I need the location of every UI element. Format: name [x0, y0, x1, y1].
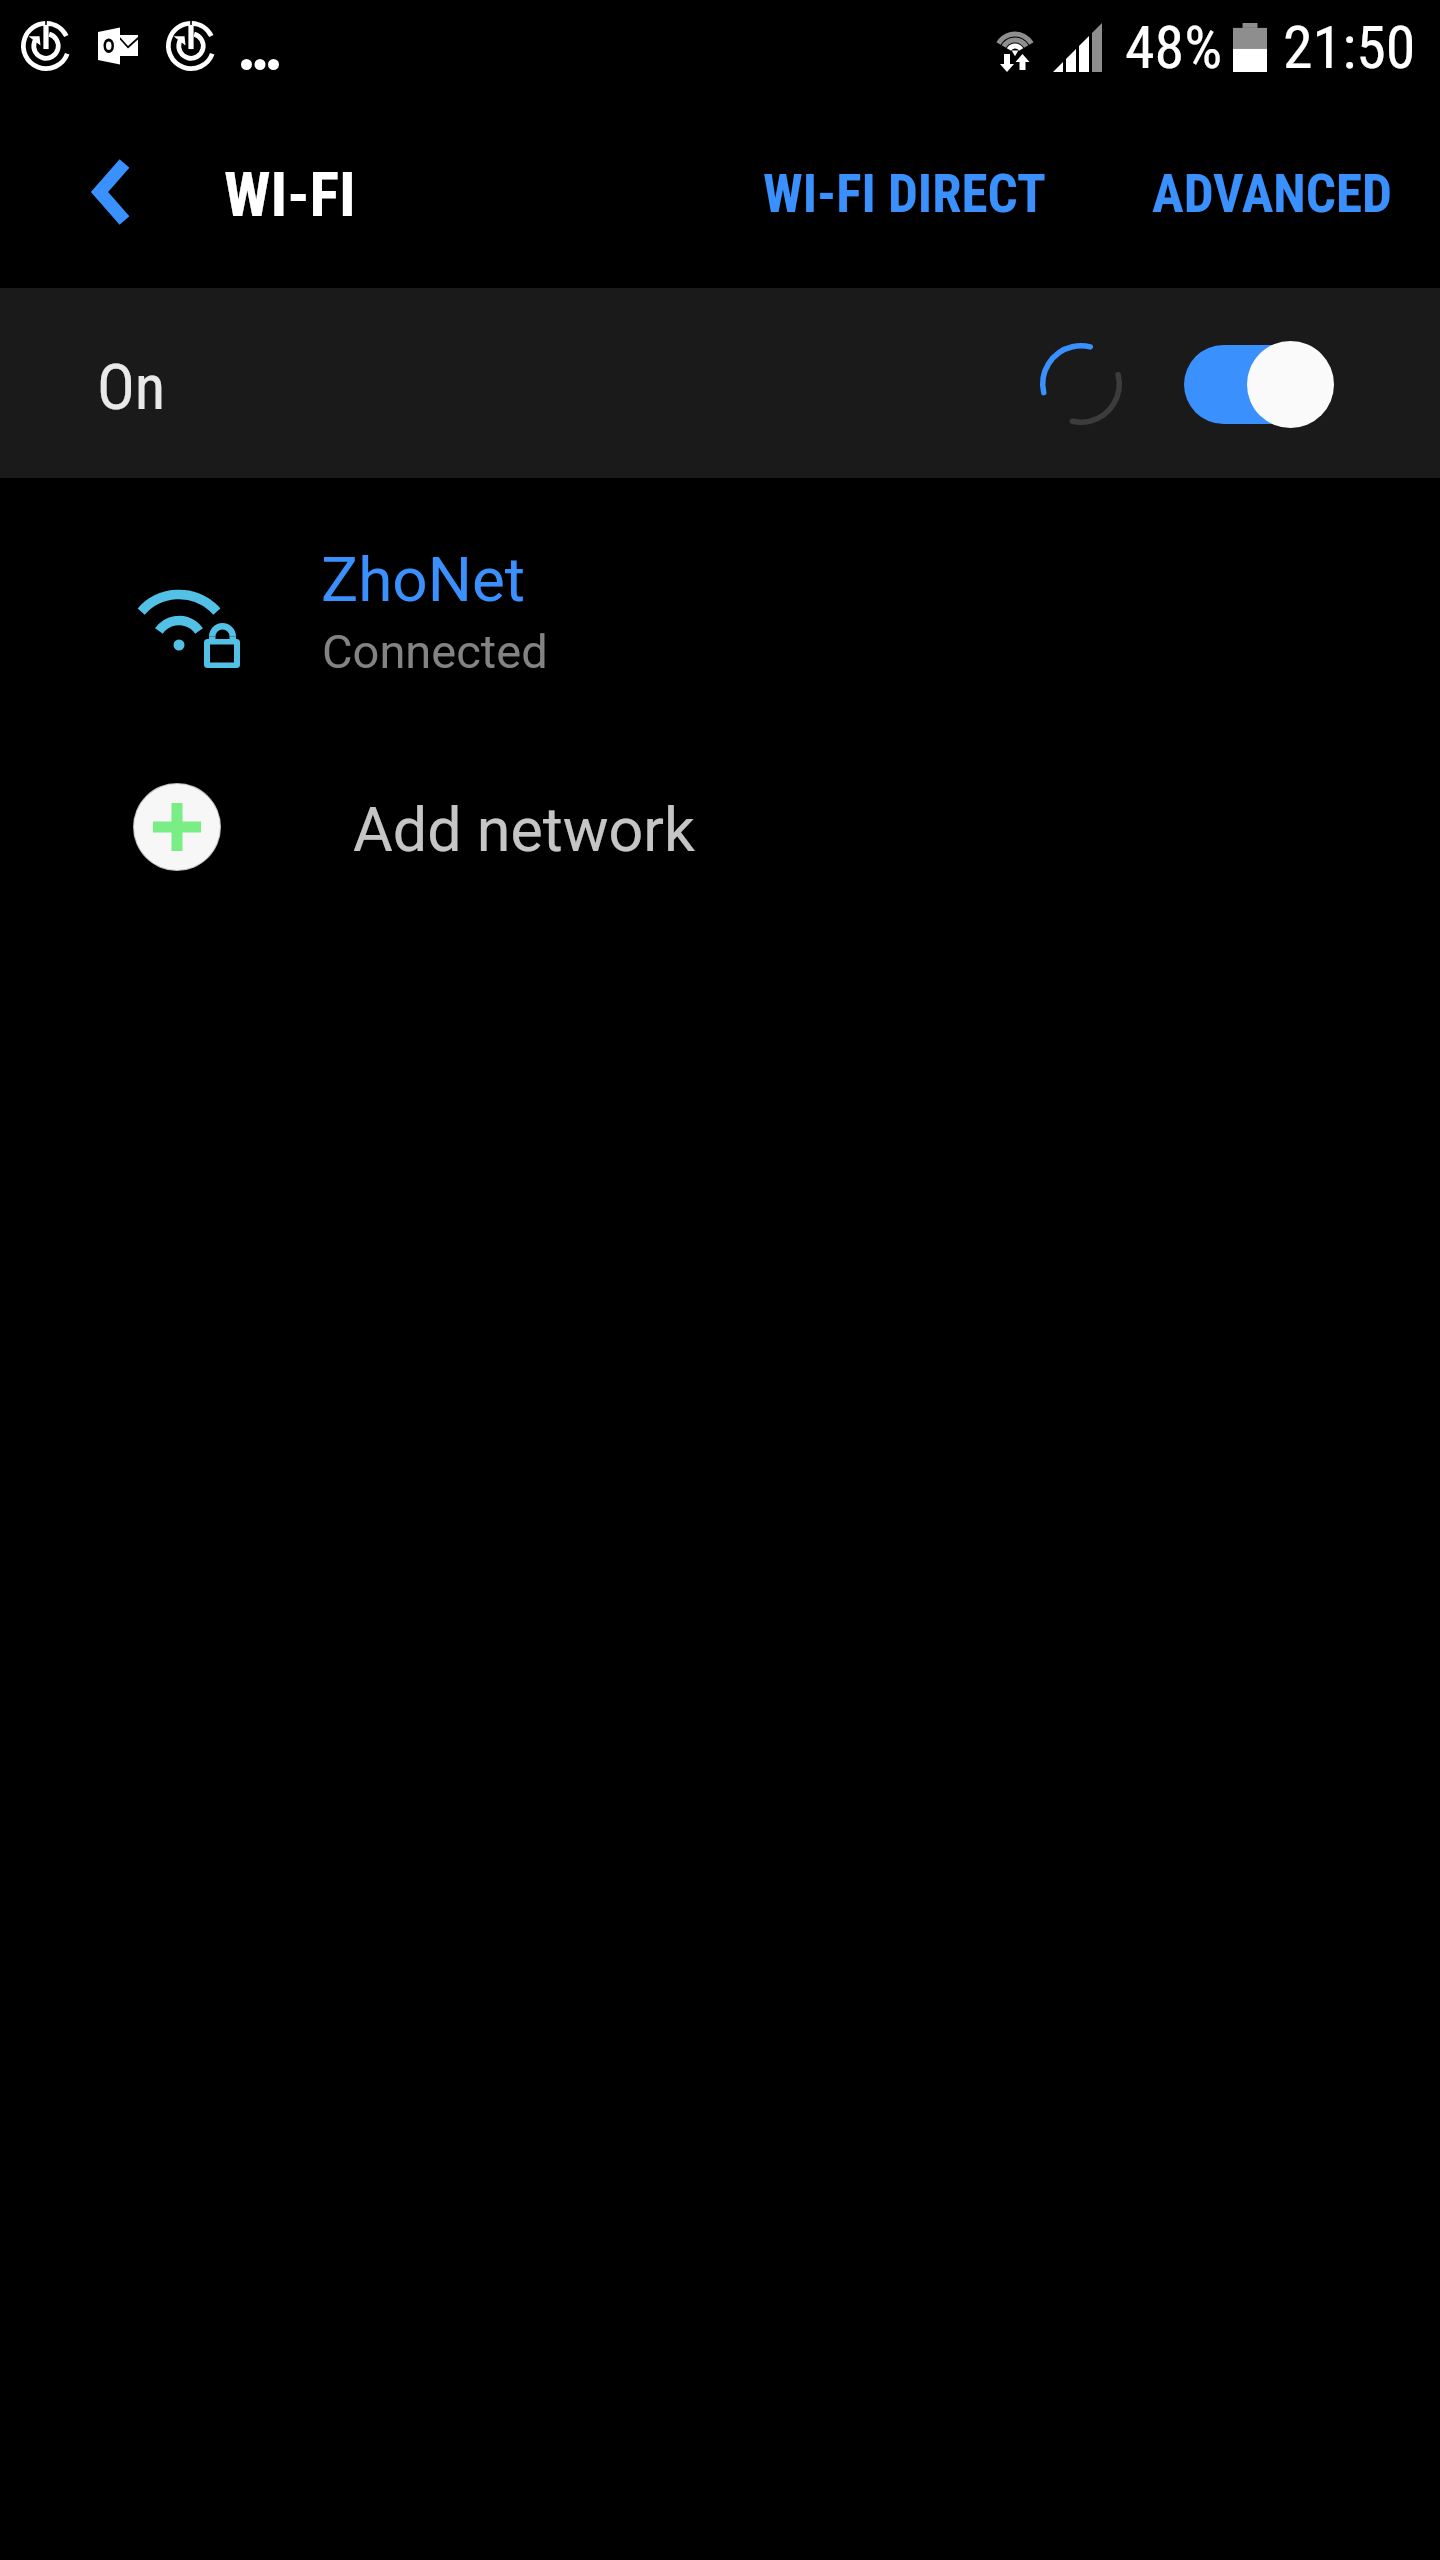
button[interactable]: Wi-Fi on	[1184, 334, 1334, 432]
staticText: ZhoNet	[321, 543, 526, 616]
staticText: Connected	[322, 624, 548, 679]
staticText: Add network	[353, 794, 695, 865]
staticText: On	[97, 351, 166, 425]
staticText: 48%	[1125, 12, 1223, 82]
button[interactable]: ZhoNet	[0, 500, 1440, 690]
button[interactable]: Add network	[0, 745, 1440, 925]
button[interactable]: On	[0, 288, 1440, 478]
staticText: WI-FI	[224, 158, 356, 231]
button[interactable]: WI-FI DIRECT	[729, 133, 1079, 255]
staticText: ADVANCED	[1152, 163, 1392, 225]
staticText: WI-FI DIRECT	[763, 163, 1046, 225]
button[interactable]: ADVANCED	[1122, 133, 1422, 255]
button[interactable]: Navigate up	[53, 133, 171, 251]
staticText: 21:50	[1283, 12, 1416, 82]
